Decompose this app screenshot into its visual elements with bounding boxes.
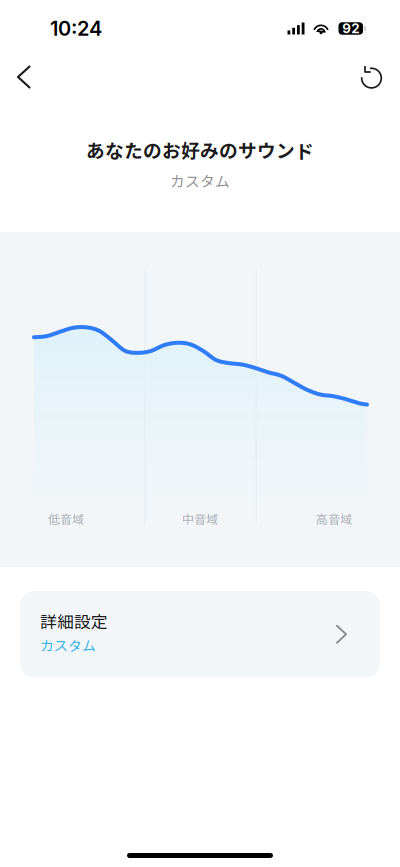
staticText: 10:24 [50, 16, 102, 41]
staticText: カスタム [170, 170, 230, 191]
staticText: 詳細設定 [40, 609, 108, 633]
staticText: 高音域 [316, 510, 352, 527]
button[interactable]: Reset [345, 58, 400, 95]
staticText: あなたのお好みのサウンド [86, 136, 314, 163]
button[interactable]: 詳細設定 [20, 591, 380, 677]
button[interactable]: Back [0, 58, 45, 95]
staticText: 92 [342, 20, 359, 36]
staticText: 中音域 [182, 510, 218, 527]
staticText: カスタム [40, 635, 96, 655]
staticText: 低音域 [48, 510, 84, 527]
